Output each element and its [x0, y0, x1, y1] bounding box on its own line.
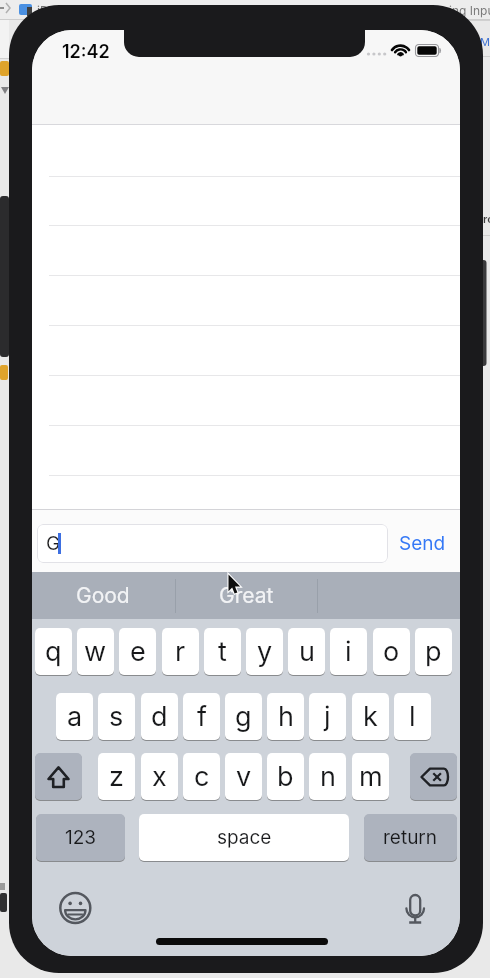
button[interactable]: z	[98, 753, 135, 800]
button[interactable]: n	[309, 753, 346, 800]
button[interactable]: u	[288, 628, 325, 675]
staticText: y	[257, 635, 273, 668]
staticText: c	[194, 760, 210, 793]
staticText: i	[345, 635, 352, 668]
staticText: Good	[76, 583, 130, 608]
staticText: ing Input	[449, 3, 490, 18]
staticText: 123	[65, 826, 97, 849]
staticText: o	[383, 635, 400, 668]
button[interactable]: Good	[32, 572, 174, 619]
staticText: q	[45, 635, 62, 668]
button[interactable]: l	[394, 693, 431, 740]
button[interactable]: Great	[175, 572, 317, 619]
button[interactable]: j	[309, 693, 346, 740]
button[interactable]: c	[183, 753, 220, 800]
staticText: d	[151, 700, 168, 733]
staticText: n	[320, 760, 336, 793]
staticText: Great	[219, 583, 274, 608]
staticText: 12:42	[62, 41, 110, 61]
staticText: e	[130, 635, 146, 668]
staticText: s	[109, 700, 124, 733]
staticText: v	[236, 760, 252, 793]
staticText: return	[383, 826, 438, 849]
button[interactable]: f	[183, 693, 220, 740]
staticText: m	[359, 760, 383, 793]
button[interactable]: y	[246, 628, 283, 675]
button[interactable]: r	[162, 628, 199, 675]
button[interactable]: t	[204, 628, 241, 675]
staticText: space	[217, 826, 272, 849]
staticText: a	[67, 700, 83, 733]
button[interactable]: p	[415, 628, 452, 675]
button[interactable]: m	[352, 753, 389, 800]
staticText: p	[425, 635, 442, 668]
staticText: z	[109, 760, 124, 793]
staticText: ro	[483, 212, 490, 225]
button[interactable]: w	[77, 628, 114, 675]
staticText: k	[363, 700, 378, 733]
button[interactable]: return	[364, 814, 457, 861]
button[interactable]: s	[98, 693, 135, 740]
staticText: b	[277, 760, 294, 793]
staticText: iPh	[37, 3, 55, 18]
staticText: l	[409, 700, 416, 733]
button[interactable]: 123	[36, 814, 125, 861]
staticText: g	[235, 700, 252, 733]
button[interactable]	[35, 753, 82, 800]
button[interactable]: e	[119, 628, 156, 675]
staticText: h	[278, 700, 294, 733]
button[interactable]: v	[225, 753, 262, 800]
staticText: f	[197, 700, 207, 733]
staticText: Send	[399, 532, 446, 555]
button[interactable]: o	[373, 628, 410, 675]
button[interactable]: k	[352, 693, 389, 740]
staticText: t	[218, 635, 227, 668]
staticText: j	[324, 700, 331, 733]
button[interactable]: Send	[396, 528, 448, 558]
staticText: w	[84, 635, 107, 668]
staticText: G	[46, 532, 61, 555]
button[interactable]	[410, 753, 457, 800]
button[interactable]: h	[267, 693, 304, 740]
button[interactable]: x	[141, 753, 178, 800]
button[interactable]: G	[37, 524, 388, 563]
button[interactable]: d	[141, 693, 178, 740]
button[interactable]: a	[56, 693, 93, 740]
staticText: r	[175, 635, 186, 668]
button[interactable]: q	[35, 628, 72, 675]
staticText: x	[152, 760, 167, 793]
button[interactable]: g	[225, 693, 262, 740]
staticText: u	[299, 635, 315, 668]
button[interactable]: space	[139, 814, 349, 861]
staticText: Mai	[480, 35, 490, 48]
button[interactable]: b	[267, 753, 304, 800]
button[interactable]: i	[330, 628, 367, 675]
